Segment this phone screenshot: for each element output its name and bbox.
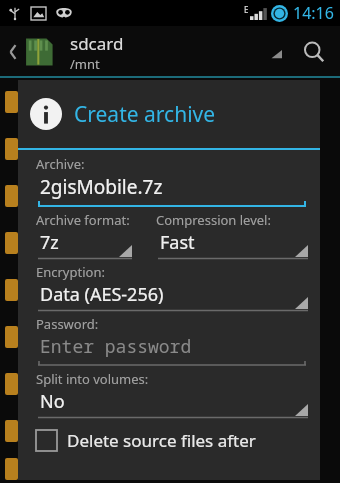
staticText: Data (AES-256) [40,282,164,307]
staticText: sdcard [70,32,124,55]
staticText: Fast [160,230,195,255]
button[interactable]: Search [296,34,332,70]
staticText: Compression level: [156,211,271,229]
button[interactable]: 7z [24,230,136,260]
button[interactable]: Fast [144,230,312,260]
button[interactable]: Enter password [24,334,312,367]
staticText: Archive format: [36,211,130,229]
staticText: No [40,389,65,414]
staticText: Delete source files after [67,429,256,452]
staticText: Split into volumes: [36,370,149,388]
staticText: E [244,4,249,15]
staticText: 2gisMobile.7z [40,174,163,200]
staticText: Password: [36,315,99,333]
button[interactable]: 2gisMobile.7z [24,174,312,208]
staticText: /mnt [70,55,100,73]
button[interactable]: Data (AES-256) [24,282,312,312]
button[interactable]: Delete source files after [24,425,312,456]
staticText: Encryption: [36,263,105,281]
staticText: Enter password [40,334,192,359]
button[interactable]: Navigate up [6,31,58,73]
button[interactable]: More options [268,45,282,59]
staticText: Create archive [74,100,216,129]
button[interactable]: No [24,389,312,419]
staticText: Archive: [36,155,85,173]
staticText: 14:16 [293,2,334,24]
staticText: 7z [40,230,59,255]
